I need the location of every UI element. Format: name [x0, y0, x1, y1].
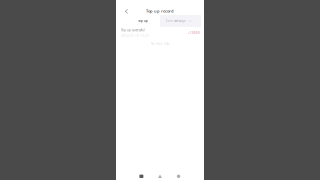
button[interactable]: Back: [116, 7, 132, 15]
button[interactable]: Top up successful: [116, 27, 204, 39]
staticText: Top up: [138, 19, 148, 23]
button[interactable]: Top up: [116, 15, 160, 27]
button[interactable]: Profile: [169, 168, 188, 180]
button[interactable]: Discover: [151, 168, 169, 180]
staticText: No more data: [151, 42, 169, 45]
staticText: Top up successful: [121, 28, 145, 32]
staticText: 2024-05-18 14:23: [121, 34, 149, 37]
staticText: Coin exchange: [166, 19, 186, 23]
button[interactable]: Home: [132, 168, 151, 180]
staticText: +10000: [188, 31, 200, 35]
staticText: Top up record: [146, 8, 174, 14]
button[interactable]: Coin exchange: [160, 15, 201, 27]
